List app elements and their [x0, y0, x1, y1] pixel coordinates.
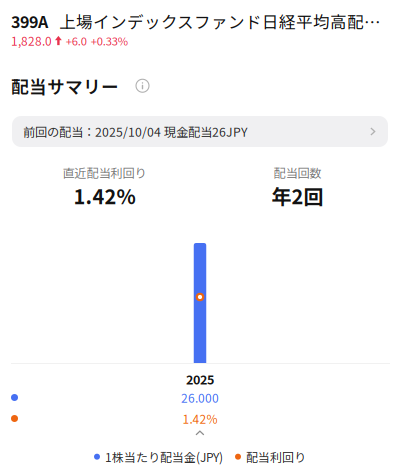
staticText: 1.42%	[73, 181, 135, 210]
staticText: +6.0	[66, 32, 87, 49]
staticText: 配当利回り	[246, 448, 306, 465]
staticText: 399A	[11, 9, 48, 33]
staticText: 上場インデックスファンド日経平均高配…	[59, 9, 381, 33]
staticText: +0.33%	[91, 32, 128, 49]
staticText: 1,828.0	[11, 32, 52, 49]
staticText: 26.000	[181, 389, 219, 406]
button[interactable]: 配当詳細を折りたたむ	[185, 429, 215, 437]
staticText: 直近配当利回り	[62, 164, 146, 181]
staticText: 2025	[186, 370, 214, 388]
button[interactable]: 前回の配当：2025/10/04 現金配当26JPY	[12, 116, 388, 147]
staticText: 年2回	[271, 181, 323, 210]
staticText: 前回の配当：2025/10/04 現金配当26JPY	[23, 123, 248, 140]
staticText: 配当回数	[273, 164, 321, 181]
staticText: 配当サマリー	[11, 73, 119, 98]
staticText: 1株当たり配当金(JPY)	[105, 448, 223, 465]
staticText: 1.42%	[182, 410, 217, 427]
